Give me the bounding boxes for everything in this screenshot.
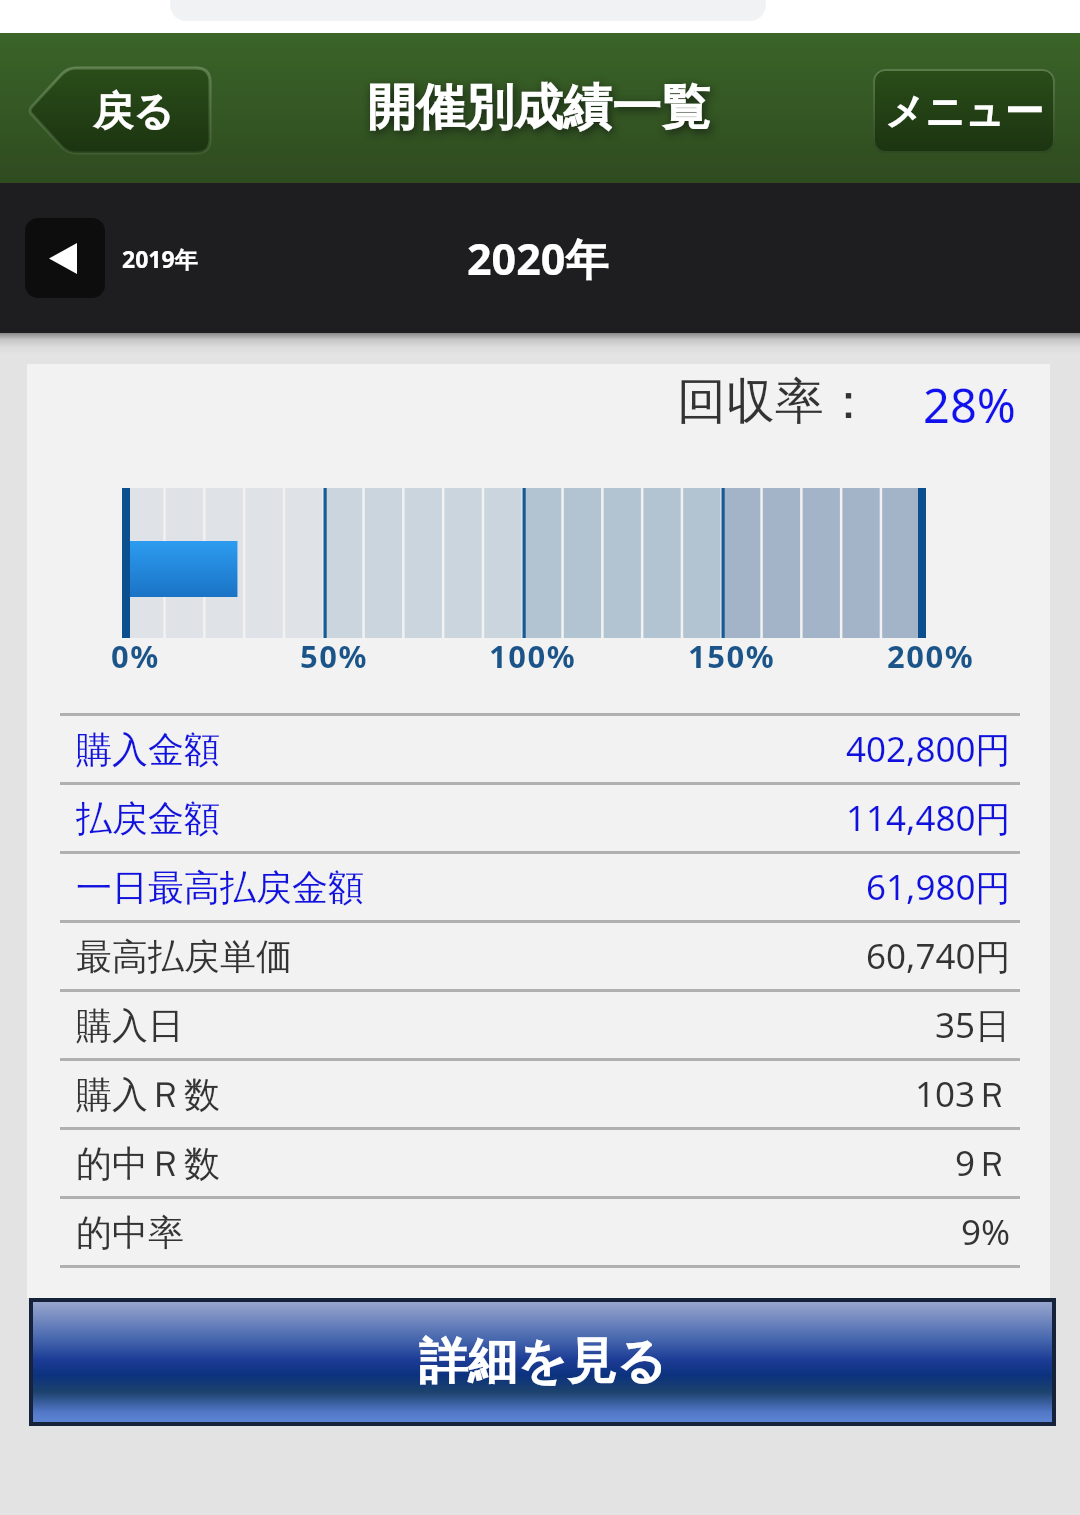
staticText: 0% [111, 635, 160, 677]
staticText: 61,980円 [866, 863, 1011, 911]
button[interactable]: 一日最高払戻金額 [27, 854, 1050, 923]
staticText: 購入Ｒ数 [76, 1072, 220, 1117]
staticText: 402,800円 [846, 725, 1011, 773]
staticText: 開催別成績一覧 [367, 77, 710, 139]
button[interactable]: 払戻金額 [27, 785, 1050, 854]
button[interactable]: 最高払戻単価 [27, 923, 1050, 992]
button[interactable]: 購入金額 [27, 716, 1050, 785]
staticText: メニュー [885, 87, 1044, 136]
staticText: 戻る [93, 86, 174, 136]
button[interactable]: 購入Ｒ数 [27, 1061, 1050, 1130]
staticText: 100% [489, 635, 577, 677]
button[interactable]: 的中率 [27, 1199, 1050, 1268]
button[interactable]: 購入日 [27, 992, 1050, 1061]
staticText: 2019年 [122, 243, 198, 274]
button[interactable]: 戻る [27, 68, 210, 153]
staticText: 2020年 [467, 229, 609, 288]
staticText: 9% [961, 1208, 1011, 1256]
staticText: 150% [688, 635, 776, 677]
button[interactable]: 詳細を見る [33, 1302, 1052, 1422]
staticText: 9Ｒ [955, 1139, 1011, 1187]
staticText: 50% [300, 635, 368, 677]
staticText: 103Ｒ [915, 1070, 1011, 1118]
staticText: 200% [887, 635, 975, 677]
button[interactable]: メニュー [873, 69, 1055, 153]
button[interactable]: 2019年 [25, 218, 198, 298]
button[interactable]: 的中Ｒ数 [27, 1130, 1050, 1199]
staticText: 35日 [935, 1001, 1011, 1049]
staticText: 最高払戻単価 [76, 934, 292, 979]
staticText: 114,480円 [846, 794, 1011, 842]
staticText: 28% [923, 373, 1016, 437]
staticText: 回収率： [677, 371, 873, 433]
staticText: 60,740円 [866, 932, 1011, 980]
staticText: 購入金額 [76, 727, 220, 772]
staticText: 一日最高払戻金額 [76, 865, 364, 910]
staticText: 払戻金額 [76, 796, 220, 841]
staticText: 詳細を見る [419, 1331, 667, 1393]
staticText: 的中Ｒ数 [76, 1141, 220, 1186]
staticText: 購入日 [76, 1003, 184, 1048]
staticText: 的中率 [76, 1210, 184, 1255]
